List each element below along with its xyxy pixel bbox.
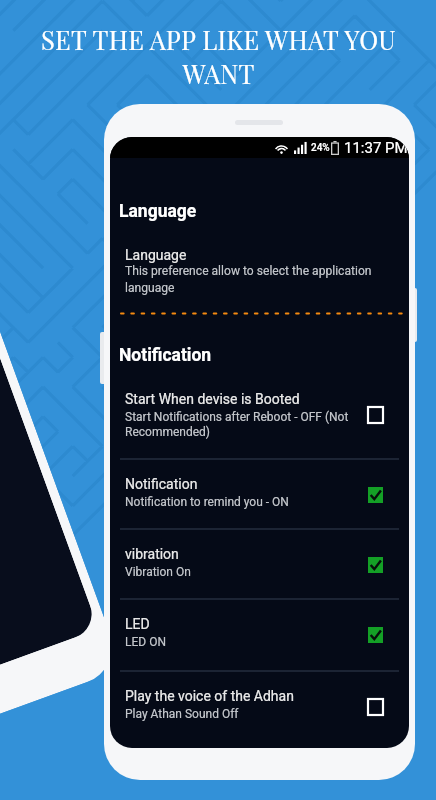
button[interactable] xyxy=(110,672,409,724)
staticText: Notification xyxy=(125,476,198,492)
staticText: Play Athan Sound Off xyxy=(125,707,365,721)
button[interactable] xyxy=(110,600,409,652)
button[interactable]: Enabled toggle xyxy=(358,478,392,512)
staticText: Start When devise is Booted xyxy=(125,391,300,407)
staticText: LED ON xyxy=(125,635,365,649)
button[interactable]: Disabled toggle xyxy=(358,398,392,432)
button[interactable]: Enabled toggle xyxy=(358,618,392,652)
staticText: SET THE APP LIKE WHAT YOU xyxy=(41,22,396,56)
staticText: 24% xyxy=(311,142,330,154)
button[interactable]: Enabled toggle xyxy=(358,548,392,582)
staticText: This preference allow to select the appl… xyxy=(125,264,400,295)
staticText: Vibration On xyxy=(125,565,365,579)
staticText: Play the voice of the Adhan xyxy=(125,688,294,704)
staticText: Language xyxy=(119,201,197,222)
button[interactable] xyxy=(110,375,409,442)
staticText: Notification to remind you - ON xyxy=(125,495,365,509)
button[interactable] xyxy=(110,460,409,512)
staticText: Start Notifications after Reboot - OFF (… xyxy=(125,410,375,439)
button[interactable] xyxy=(110,530,409,582)
staticText: Language xyxy=(125,247,187,263)
staticText: vibration xyxy=(125,546,179,562)
staticText: Notification xyxy=(119,345,212,366)
button[interactable]: Disabled toggle xyxy=(358,690,392,724)
staticText: WANT xyxy=(182,56,255,90)
staticText: LED xyxy=(125,616,150,632)
staticText: 11:37 PM xyxy=(344,139,408,157)
